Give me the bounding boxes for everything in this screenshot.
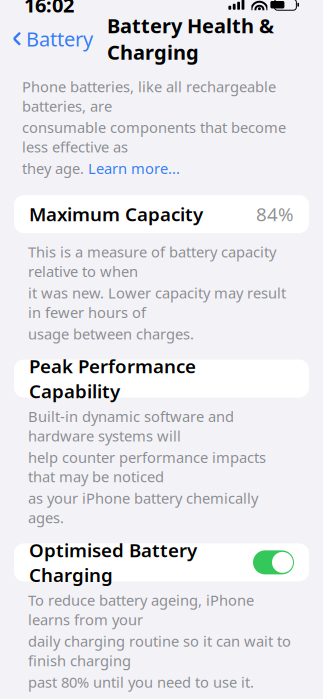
staticText: consumable components that become less e…: [22, 118, 286, 157]
staticText: 16:02: [24, 0, 74, 18]
staticText: Built-in dynamic software and hardware s…: [28, 406, 234, 445]
button[interactable]: Optimised Battery Charging: [14, 543, 309, 581]
staticText: it was new. Lower capacity may result in…: [28, 283, 286, 322]
staticText: Optimised Battery Charging: [29, 538, 197, 587]
staticText: daily charging routine so it can wait to…: [28, 631, 291, 670]
staticText: Battery: [26, 25, 93, 52]
staticText: help counter performance impacts that ma…: [28, 447, 266, 486]
button[interactable]: Learn more...: [88, 159, 180, 178]
staticText: Phone batteries, like all rechargeable b…: [22, 77, 276, 116]
staticText: past 80% until you need to use it.: [28, 672, 254, 692]
staticText: To reduce battery ageing, iPhone learns …: [28, 590, 254, 629]
staticText: This is a measure of battery capacity re…: [28, 242, 276, 281]
button[interactable]: Battery: [12, 19, 97, 58]
staticText: usage between charges.: [28, 324, 194, 343]
button[interactable]: Maximum Capacity: [14, 195, 309, 233]
staticText: Battery Health & Charging: [107, 12, 274, 65]
staticText: Learn more...: [88, 159, 180, 178]
button[interactable]: Peak Performance Capability: [14, 359, 309, 397]
staticText: 84%: [256, 202, 294, 226]
staticText: they age.: [22, 159, 84, 178]
staticText: Maximum Capacity: [29, 202, 203, 226]
staticText: as your iPhone battery chemically ages.: [28, 488, 258, 527]
staticText: Peak Performance Capability: [29, 354, 196, 403]
